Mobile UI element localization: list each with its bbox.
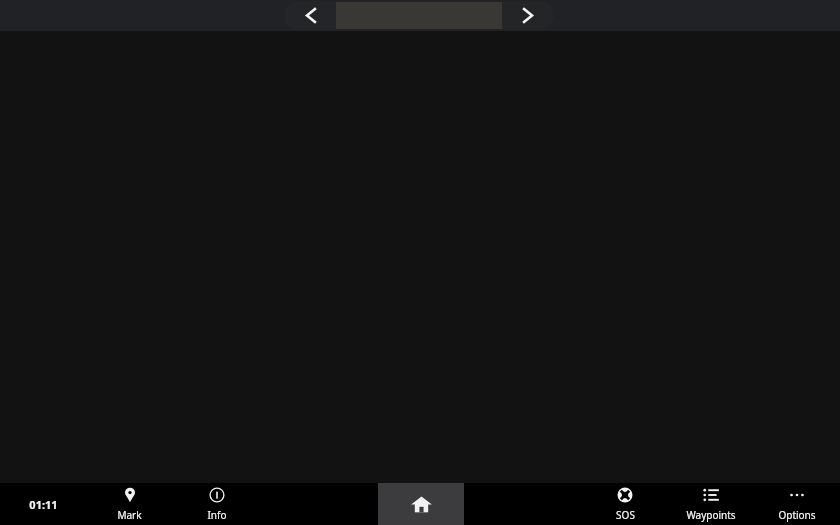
button[interactable]: Next [502,1,554,30]
staticText: Info [207,508,227,522]
button[interactable]: 01:11 [0,483,86,525]
button[interactable]: Mark [86,483,173,525]
staticText: 01:11 [29,497,58,512]
button[interactable]: Options [754,483,840,525]
staticText: SOS [616,508,635,522]
staticText: Waypoints [686,508,736,522]
staticText: Mark [117,508,142,522]
button[interactable]: Home [378,483,464,525]
button[interactable]: Info [173,483,260,525]
button[interactable]: Previous [284,1,336,30]
button[interactable]: SOS [582,483,668,525]
button[interactable]: Waypoints [668,483,754,525]
staticText: Options [778,508,816,522]
